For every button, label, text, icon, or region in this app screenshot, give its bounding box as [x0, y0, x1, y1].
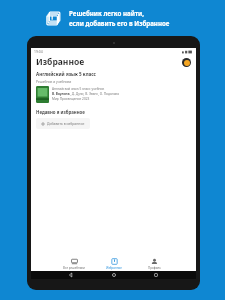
staticText: Недавно я избранное: [36, 109, 85, 115]
staticText: , Д. Дули, В. Эванс, О. Подоляко: [70, 92, 120, 96]
button[interactable]: Профиль: [182, 58, 191, 67]
other: Обзор: [154, 273, 158, 277]
staticText: Английский язык 5 класс учебник: [52, 87, 105, 91]
staticText: Решебник легко найти,: [69, 9, 144, 17]
staticText: Решебник и учебники: [36, 79, 72, 83]
staticText: В. Ваулина: [52, 92, 70, 96]
button[interactable]: Профиль: [134, 257, 174, 271]
other: Домой: [112, 273, 116, 277]
staticText: Английский язык 5 класс: [36, 71, 97, 77]
staticText: Профиль: [148, 266, 161, 270]
staticText: Мир Просвещение 2023: [52, 97, 90, 101]
staticText: 19:04: [34, 49, 43, 54]
button[interactable]: Английский язык 5 класс учебник: [36, 85, 191, 104]
staticText: Добавить в избранное: [47, 121, 85, 126]
button[interactable]: Добавить в избранное: [36, 118, 90, 129]
other: Назад: [69, 273, 73, 277]
button[interactable]: Все решебники: [54, 257, 94, 271]
staticText: если добавить его в Избранное: [69, 19, 170, 27]
staticText: Избранное: [36, 56, 85, 68]
button[interactable]: Избранное: [94, 257, 134, 271]
staticText: Все решебники: [63, 266, 85, 270]
staticText: Избранное: [106, 266, 122, 270]
